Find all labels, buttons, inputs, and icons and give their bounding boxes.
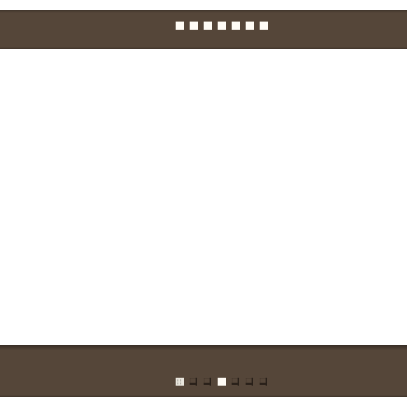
button[interactable]: Saved	[291, 345, 349, 397]
button[interactable]: Home	[0, 345, 59, 397]
button[interactable]: Search	[59, 345, 117, 397]
button[interactable]: Profile	[349, 345, 407, 397]
button[interactable]: Alerts	[233, 345, 291, 397]
button[interactable]: Browse	[175, 345, 233, 397]
button[interactable]: Library	[117, 345, 175, 397]
